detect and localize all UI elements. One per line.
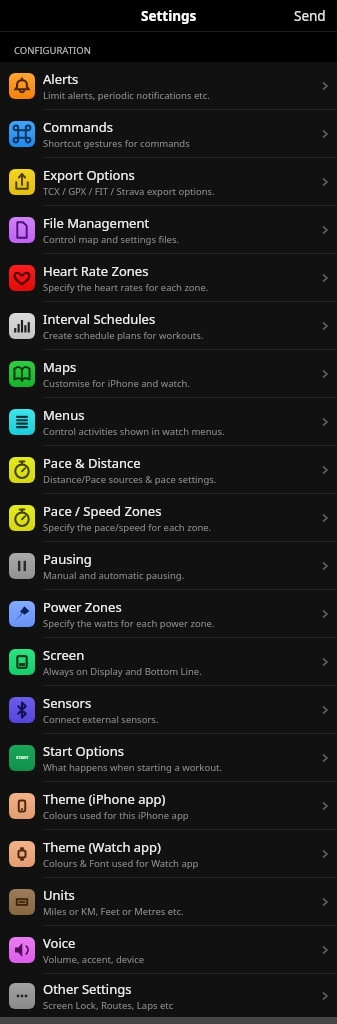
staticText: CONFIGURATION	[14, 44, 91, 57]
button[interactable]: Heart Rate Zones	[0, 254, 337, 301]
button[interactable]: Pace / Speed Zones	[0, 494, 337, 541]
staticText: File Management	[43, 214, 150, 232]
button[interactable]: Theme (Watch app)	[0, 830, 337, 877]
staticText: Create schedule plans for workouts.	[43, 329, 204, 342]
button[interactable]: Screen	[0, 638, 337, 685]
staticText: Heart Rate Zones	[43, 262, 149, 280]
staticText: What happens when starting a workout.	[43, 761, 223, 774]
button[interactable]: Commands	[0, 110, 337, 157]
staticText: Theme (Watch app)	[43, 838, 162, 856]
staticText: Colours used for this iPhone app	[43, 809, 189, 822]
staticText: Other Settings	[43, 980, 132, 998]
button[interactable]: Pausing	[0, 542, 337, 589]
staticText: Specify the watts for each power zone.	[43, 617, 215, 630]
staticText: Commands	[43, 118, 113, 136]
staticText: Alerts	[43, 70, 79, 88]
staticText: Distance/Pace sources & pace settings.	[43, 473, 217, 486]
button[interactable]: Menus	[0, 398, 337, 445]
button[interactable]: Sensors	[0, 686, 337, 733]
staticText: TCX / GPX / FIT / Strava export options.	[43, 185, 215, 198]
staticText: Maps	[43, 358, 77, 376]
button[interactable]: Pace & Distance	[0, 446, 337, 493]
button[interactable]: Export Options	[0, 158, 337, 205]
staticText: Units	[43, 886, 75, 904]
staticText: Pausing	[43, 550, 92, 568]
button[interactable]: File Management	[0, 206, 337, 253]
staticText: Send	[294, 7, 326, 24]
staticText: Theme (iPhone app)	[43, 790, 166, 808]
staticText: Shortcut gestures for commands	[43, 137, 190, 150]
staticText: Interval Schedules	[43, 310, 156, 328]
staticText: Start Options	[43, 742, 124, 760]
button[interactable]: Power Zones	[0, 590, 337, 637]
staticText: START	[16, 755, 29, 761]
staticText: Sensors	[43, 694, 92, 712]
staticText: Screen Lock, Routes, Laps etc	[43, 999, 174, 1012]
staticText: Specify the heart rates for each zone.	[43, 281, 209, 294]
staticText: Limit alerts, periodic notifications etc…	[43, 89, 210, 102]
staticText: Voice	[43, 934, 76, 952]
staticText: Volume, accent, device	[43, 953, 145, 966]
staticText: Menus	[43, 406, 85, 424]
staticText: Control activities shown in watch menus.	[43, 425, 225, 438]
staticText: Screen	[43, 646, 85, 664]
staticText: Power Zones	[43, 598, 122, 616]
button[interactable]: Interval Schedules	[0, 302, 337, 349]
staticText: Export Options	[43, 166, 135, 184]
staticText: Manual and automatic pausing.	[43, 569, 185, 582]
button[interactable]: Theme (iPhone app)	[0, 782, 337, 829]
staticText: Pace / Speed Zones	[43, 502, 162, 520]
button[interactable]: Maps	[0, 350, 337, 397]
staticText: Specify the pace/speed for each zone.	[43, 521, 212, 534]
staticText: Control map and settings files.	[43, 233, 180, 246]
button[interactable]: START	[0, 734, 337, 781]
button[interactable]: Voice	[0, 926, 337, 973]
staticText: Settings	[141, 7, 197, 25]
staticText: Colours & Font used for Watch app	[43, 857, 199, 870]
staticText: Miles or KM, Feet or Metres etc.	[43, 905, 184, 918]
staticText: Pace & Distance	[43, 454, 141, 472]
staticText: Always on Display and Bottom Line.	[43, 665, 202, 678]
staticText: Customise for iPhone and watch.	[43, 377, 190, 390]
button[interactable]: Units	[0, 878, 337, 925]
button[interactable]: Alerts	[0, 62, 337, 109]
staticText: Connect external sensors.	[43, 713, 159, 726]
button[interactable]: Other Settings	[0, 974, 337, 1017]
button[interactable]: Send	[283, 0, 337, 31]
